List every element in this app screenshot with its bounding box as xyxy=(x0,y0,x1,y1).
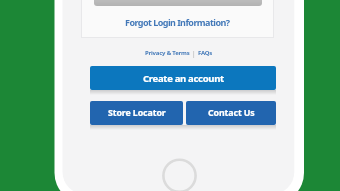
button[interactable]: Create an account xyxy=(90,66,276,90)
button[interactable]: Privacy & Terms xyxy=(144,48,191,58)
button[interactable]: FAQs xyxy=(197,48,214,58)
staticText: Privacy & Terms xyxy=(145,49,190,57)
button[interactable]: Contact Us xyxy=(186,101,276,125)
staticText: Create an account xyxy=(143,72,224,85)
button[interactable] xyxy=(94,0,262,6)
staticText: Store Locator xyxy=(108,107,166,119)
staticText: FAQs xyxy=(198,49,213,57)
button[interactable]: Store Locator xyxy=(90,101,183,125)
button[interactable]: Home xyxy=(163,160,196,191)
staticText: | xyxy=(192,49,196,58)
staticText: Forgot Login Information? xyxy=(125,16,230,28)
staticText: Contact Us xyxy=(208,107,255,119)
button[interactable]: Forgot Login Information? xyxy=(121,15,234,29)
